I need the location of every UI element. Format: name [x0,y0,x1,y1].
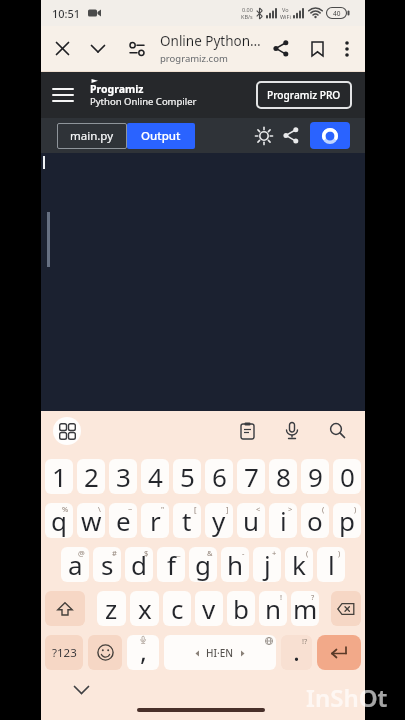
staticText: > [288,504,293,514]
button[interactable]: $ [125,547,153,582]
button[interactable]: v [195,591,223,626]
button[interactable]: 4 [141,459,169,494]
button[interactable]: _ [157,547,185,582]
button[interactable]: ! [259,591,287,626]
staticText: h [227,547,244,582]
staticText: 6 [212,459,227,494]
staticText: HI·EN [206,646,234,660]
button[interactable] [74,686,89,694]
button[interactable] [285,422,299,440]
button[interactable]: !? [281,635,312,670]
button[interactable] [273,40,289,57]
button[interactable]: HI·EN [164,635,276,670]
button[interactable] [331,591,361,626]
staticText: ( [306,548,309,558]
staticText: ] [226,504,229,514]
button[interactable]: c [163,591,191,626]
button[interactable] [45,591,85,626]
button[interactable]: [ [173,503,201,538]
button[interactable]: + [253,547,281,582]
staticText: [ [194,504,197,514]
staticText: 10:51 [52,6,81,21]
button[interactable]: ?123 [45,635,83,670]
button[interactable]: % [45,503,73,538]
button[interactable]: 5 [173,459,201,494]
button[interactable]: ( [285,547,313,582]
staticText: v [202,591,216,626]
staticText: KB/s [241,13,253,20]
button[interactable] [311,41,324,57]
staticText: 7 [244,459,259,494]
button[interactable]: z [97,591,126,626]
button[interactable]: 9 [301,459,329,494]
button[interactable]: 3 [109,459,137,494]
button[interactable]: 0 [333,459,361,494]
staticText: p [339,503,355,538]
button[interactable] [240,422,255,440]
button[interactable]: # [93,547,121,582]
button[interactable]: @ [61,547,89,582]
staticText: 5 [180,459,195,494]
staticText: l [328,547,335,582]
staticText: m [293,591,318,626]
button[interactable] [317,635,361,670]
staticText: g [195,547,211,582]
button[interactable] [88,635,122,670]
button[interactable] [255,127,273,145]
button[interactable]: ) [317,547,345,582]
button[interactable]: ~ [109,503,137,538]
button[interactable]: b [227,591,255,626]
staticText: Vo [282,6,289,13]
staticText: 0 [340,459,355,494]
button[interactable]: & [189,547,217,582]
button[interactable] [329,422,346,439]
button[interactable] [310,122,350,149]
staticText: ) [338,548,341,558]
staticText: ! [280,592,283,602]
staticText: # [112,548,117,558]
button[interactable]: > [269,503,297,538]
staticText: . [293,635,300,668]
button[interactable]: \ [77,503,105,538]
button[interactable]: ? [291,591,319,626]
button[interactable]: main.py [57,123,127,149]
staticText: ?123 [52,645,77,661]
staticText: 40 [333,9,341,18]
staticText: InShOt [306,681,388,714]
staticText: 3 [116,459,131,494]
staticText: b [233,591,249,626]
button[interactable]: ] [205,503,233,538]
staticText: 2 [84,459,99,494]
staticText: WiFi [280,13,291,20]
staticText: o [307,503,323,538]
button[interactable]: - [221,547,249,582]
staticText: d [131,547,147,582]
button[interactable] [53,88,73,102]
staticText: + [272,548,277,558]
button[interactable] [129,42,145,56]
staticText: k [292,547,306,582]
button[interactable]: , [127,635,159,670]
button[interactable]: 6 [205,459,233,494]
button[interactable]: 8 [269,459,297,494]
button[interactable]: Programiz PRO [256,81,352,109]
button[interactable]: x [130,591,159,626]
staticText: ) [354,504,357,514]
button[interactable] [345,41,349,57]
button[interactable]: " [141,503,169,538]
staticText: n [265,591,282,626]
button[interactable]: ) [333,503,361,538]
button[interactable] [56,42,69,55]
staticText: 9 [308,459,323,494]
button[interactable] [283,127,299,144]
button[interactable]: 2 [77,459,105,494]
button[interactable]: < [237,503,265,538]
staticText: ( [322,504,325,514]
staticText: \ [98,504,101,514]
button[interactable]: Output [127,123,195,149]
button[interactable] [53,417,81,445]
button[interactable] [91,45,105,53]
button[interactable]: ( [301,503,329,538]
button[interactable]: 1 [45,459,73,494]
button[interactable]: 7 [237,459,265,494]
